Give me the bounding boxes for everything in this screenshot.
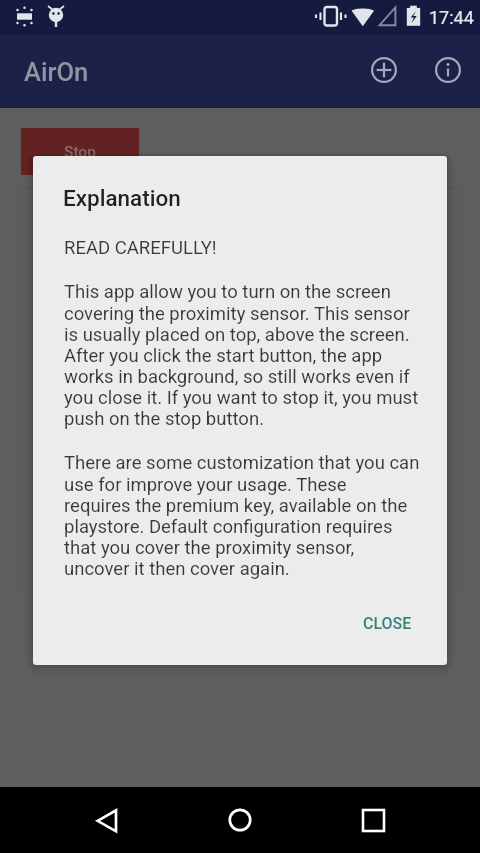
staticText: 17:44 bbox=[429, 7, 474, 28]
button[interactable]: Stop bbox=[21, 128, 139, 175]
button[interactable]: Add bbox=[360, 46, 408, 94]
button[interactable]: Back bbox=[95, 807, 120, 832]
staticText: CLOSE bbox=[363, 614, 412, 633]
button[interactable]: Home bbox=[229, 809, 251, 831]
button[interactable]: Info bbox=[424, 46, 472, 94]
staticText: There are some customization that you ca… bbox=[64, 452, 420, 579]
staticText: Explanation bbox=[63, 185, 181, 211]
staticText: Stop bbox=[64, 143, 96, 161]
staticText: READ CAREFULLY! bbox=[64, 237, 217, 259]
staticText: This app allow you to turn on the screen… bbox=[64, 281, 419, 429]
button[interactable]: Recents bbox=[363, 810, 384, 831]
button[interactable]: CLOSE bbox=[350, 605, 425, 642]
staticText: AirOn bbox=[24, 57, 89, 87]
